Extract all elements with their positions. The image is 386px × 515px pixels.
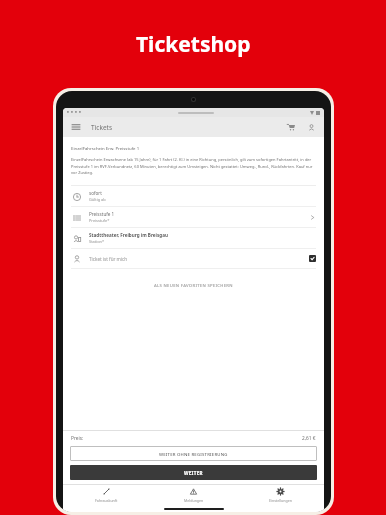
staticText: Preisstufe* bbox=[89, 218, 110, 223]
staticText: Ticketshop bbox=[136, 30, 251, 59]
staticText: 2,61 € bbox=[302, 435, 316, 442]
button[interactable]: WEITER bbox=[70, 465, 317, 480]
button[interactable]: Menu bbox=[69, 120, 83, 134]
staticText: Fahrauskunft bbox=[95, 498, 118, 503]
staticText: Station* bbox=[89, 239, 105, 244]
staticText: Gültig ab bbox=[89, 197, 106, 202]
button[interactable]: WEITER OHNE REGISTRIERUNG bbox=[70, 446, 317, 461]
staticText: ALS NEUEN FAVORITEN SPEICHERN bbox=[154, 283, 233, 289]
staticText: Einstellungen bbox=[269, 498, 292, 503]
staticText: WEITER OHNE REGISTRIERUNG bbox=[159, 451, 228, 457]
button[interactable]: Preisstufe 1 bbox=[63, 207, 324, 228]
staticText: Preisstufe 1 bbox=[89, 211, 115, 217]
staticText: EinzelFahrschein Erwachsene (ab 15 Jahre… bbox=[71, 157, 316, 175]
button[interactable]: Meldungen bbox=[150, 485, 237, 505]
staticText: Tickets bbox=[91, 123, 113, 132]
staticText: Meldungen bbox=[184, 498, 204, 503]
button[interactable]: Cart bbox=[284, 120, 298, 134]
button[interactable]: sofort bbox=[63, 186, 324, 207]
staticText: EinzelFahrschein Erw. Preisstufe 1 bbox=[71, 145, 140, 151]
button[interactable]: Einstellungen bbox=[237, 485, 324, 505]
button[interactable]: ALS NEUEN FAVORITEN SPEICHERN bbox=[63, 281, 324, 291]
staticText: sofort bbox=[89, 190, 102, 196]
staticText: Ticket ist für mich bbox=[89, 256, 128, 262]
button[interactable]: Fahrauskunft bbox=[63, 485, 150, 505]
button[interactable]: Ticket ist für mich bbox=[63, 249, 324, 269]
staticText: Stadttheater, Freiburg im Breisgau bbox=[89, 232, 168, 238]
staticText: Preis: bbox=[71, 435, 84, 442]
staticText: WEITER bbox=[184, 470, 203, 476]
button[interactable]: Stadttheater, Freiburg im Breisgau bbox=[63, 228, 324, 249]
button[interactable]: Account bbox=[304, 120, 318, 134]
